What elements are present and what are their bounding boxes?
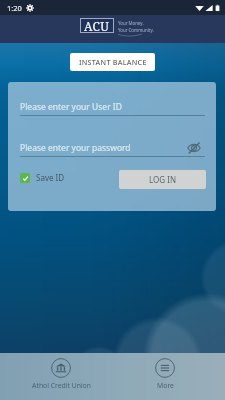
staticText: Your Money. [118,20,144,26]
staticText: Please enter your password [20,142,131,154]
staticText: Save ID [36,172,65,183]
staticText: Please enter your User ID [20,101,122,113]
button[interactable]: Athol Credit Union logo [81,19,113,32]
staticText: 1:20 [7,3,22,13]
button[interactable]: Show password [186,140,202,156]
button[interactable]: LOG IN [119,170,206,189]
button[interactable]: Athol Credit Union [16,353,106,400]
button[interactable]: More [120,353,210,400]
staticText: More [157,381,174,390]
staticText: Your Community. [118,27,154,33]
button[interactable]: Save ID [20,172,65,183]
staticText: LOG IN [149,174,176,185]
staticText: Athol Credit Union [32,381,91,390]
staticText: ACU [84,18,110,31]
staticText: INSTANT BALANCE [79,57,147,67]
button[interactable]: INSTANT BALANCE [70,53,155,71]
